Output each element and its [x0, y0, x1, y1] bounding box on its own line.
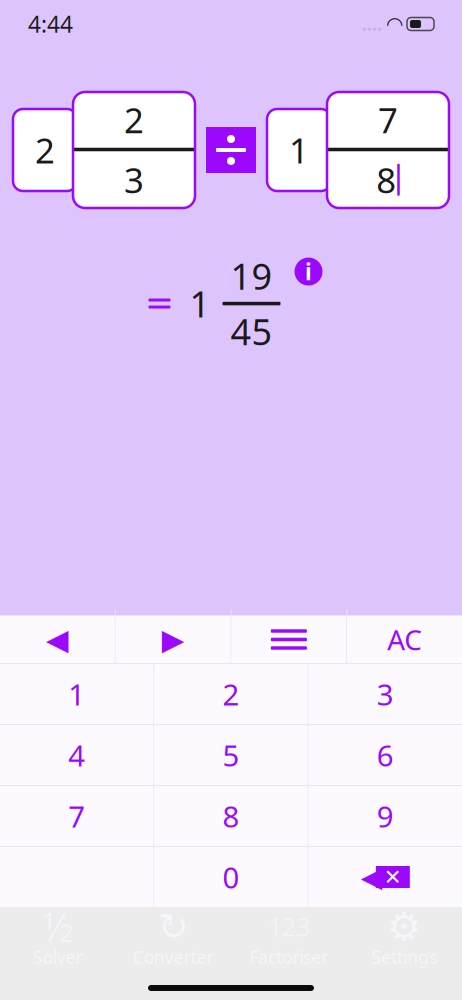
staticText: 1	[68, 674, 85, 713]
button[interactable]: 9	[309, 786, 462, 846]
button[interactable]: All clear	[347, 616, 462, 663]
staticText: 7	[378, 97, 398, 143]
staticText: ◠	[387, 13, 402, 35]
staticText: Factoriser	[249, 945, 328, 968]
staticText: 2	[35, 127, 55, 173]
button[interactable]: 7	[327, 92, 449, 208]
button[interactable]: 5	[154, 725, 308, 785]
staticText: i	[305, 256, 312, 287]
button[interactable]: Delete	[361, 861, 410, 893]
staticText: 9	[377, 796, 394, 835]
staticText: 6	[377, 735, 394, 774]
button[interactable]: ⚙	[346, 910, 462, 970]
staticText: 3	[124, 157, 144, 203]
staticText: 2	[222, 674, 239, 713]
button[interactable]: Information	[294, 258, 322, 286]
staticText: AC	[387, 621, 422, 658]
staticText: 45	[230, 307, 272, 355]
staticText: ▶	[162, 623, 185, 656]
staticText: Solver	[33, 945, 83, 968]
button[interactable]: Move right	[116, 616, 231, 663]
staticText: 1	[189, 280, 210, 327]
staticText: 8	[222, 796, 239, 835]
button[interactable]: 2	[73, 92, 195, 208]
staticText: 1	[289, 127, 309, 173]
button[interactable]: 0	[154, 847, 308, 907]
button[interactable]: 7	[0, 786, 153, 846]
staticText: ⚙	[387, 904, 422, 948]
staticText: ✕	[384, 865, 402, 889]
staticText: ◀	[361, 861, 383, 893]
button[interactable]: 1	[267, 109, 331, 191]
button[interactable]: 4	[0, 725, 153, 785]
staticText: ....	[362, 12, 382, 35]
button[interactable]: 1	[0, 664, 153, 724]
staticText: 5	[222, 735, 239, 774]
button[interactable]: 6	[309, 725, 462, 785]
staticText: ↻	[158, 905, 189, 948]
button[interactable]: ↻	[115, 910, 231, 970]
staticText: Converter	[133, 945, 214, 968]
button[interactable]: 2	[154, 664, 308, 724]
staticText: 8	[376, 157, 396, 203]
staticText: 2	[124, 97, 144, 143]
staticText: 4	[68, 735, 85, 774]
staticText: Settings	[371, 945, 437, 968]
staticText: 3	[377, 674, 394, 713]
staticText: ½	[43, 900, 73, 953]
staticText: 123	[268, 910, 310, 943]
staticText: 0	[222, 857, 239, 896]
button[interactable]: 3	[309, 664, 462, 724]
staticText: 7	[68, 796, 85, 835]
button[interactable]: 8	[154, 786, 308, 846]
button[interactable]: Menu	[231, 616, 346, 663]
staticText: 19	[230, 252, 272, 300]
staticText: ◀	[46, 623, 69, 656]
button[interactable]: 2	[13, 109, 77, 191]
button[interactable]: Move left	[0, 616, 115, 663]
staticText: 4:44	[28, 9, 73, 39]
